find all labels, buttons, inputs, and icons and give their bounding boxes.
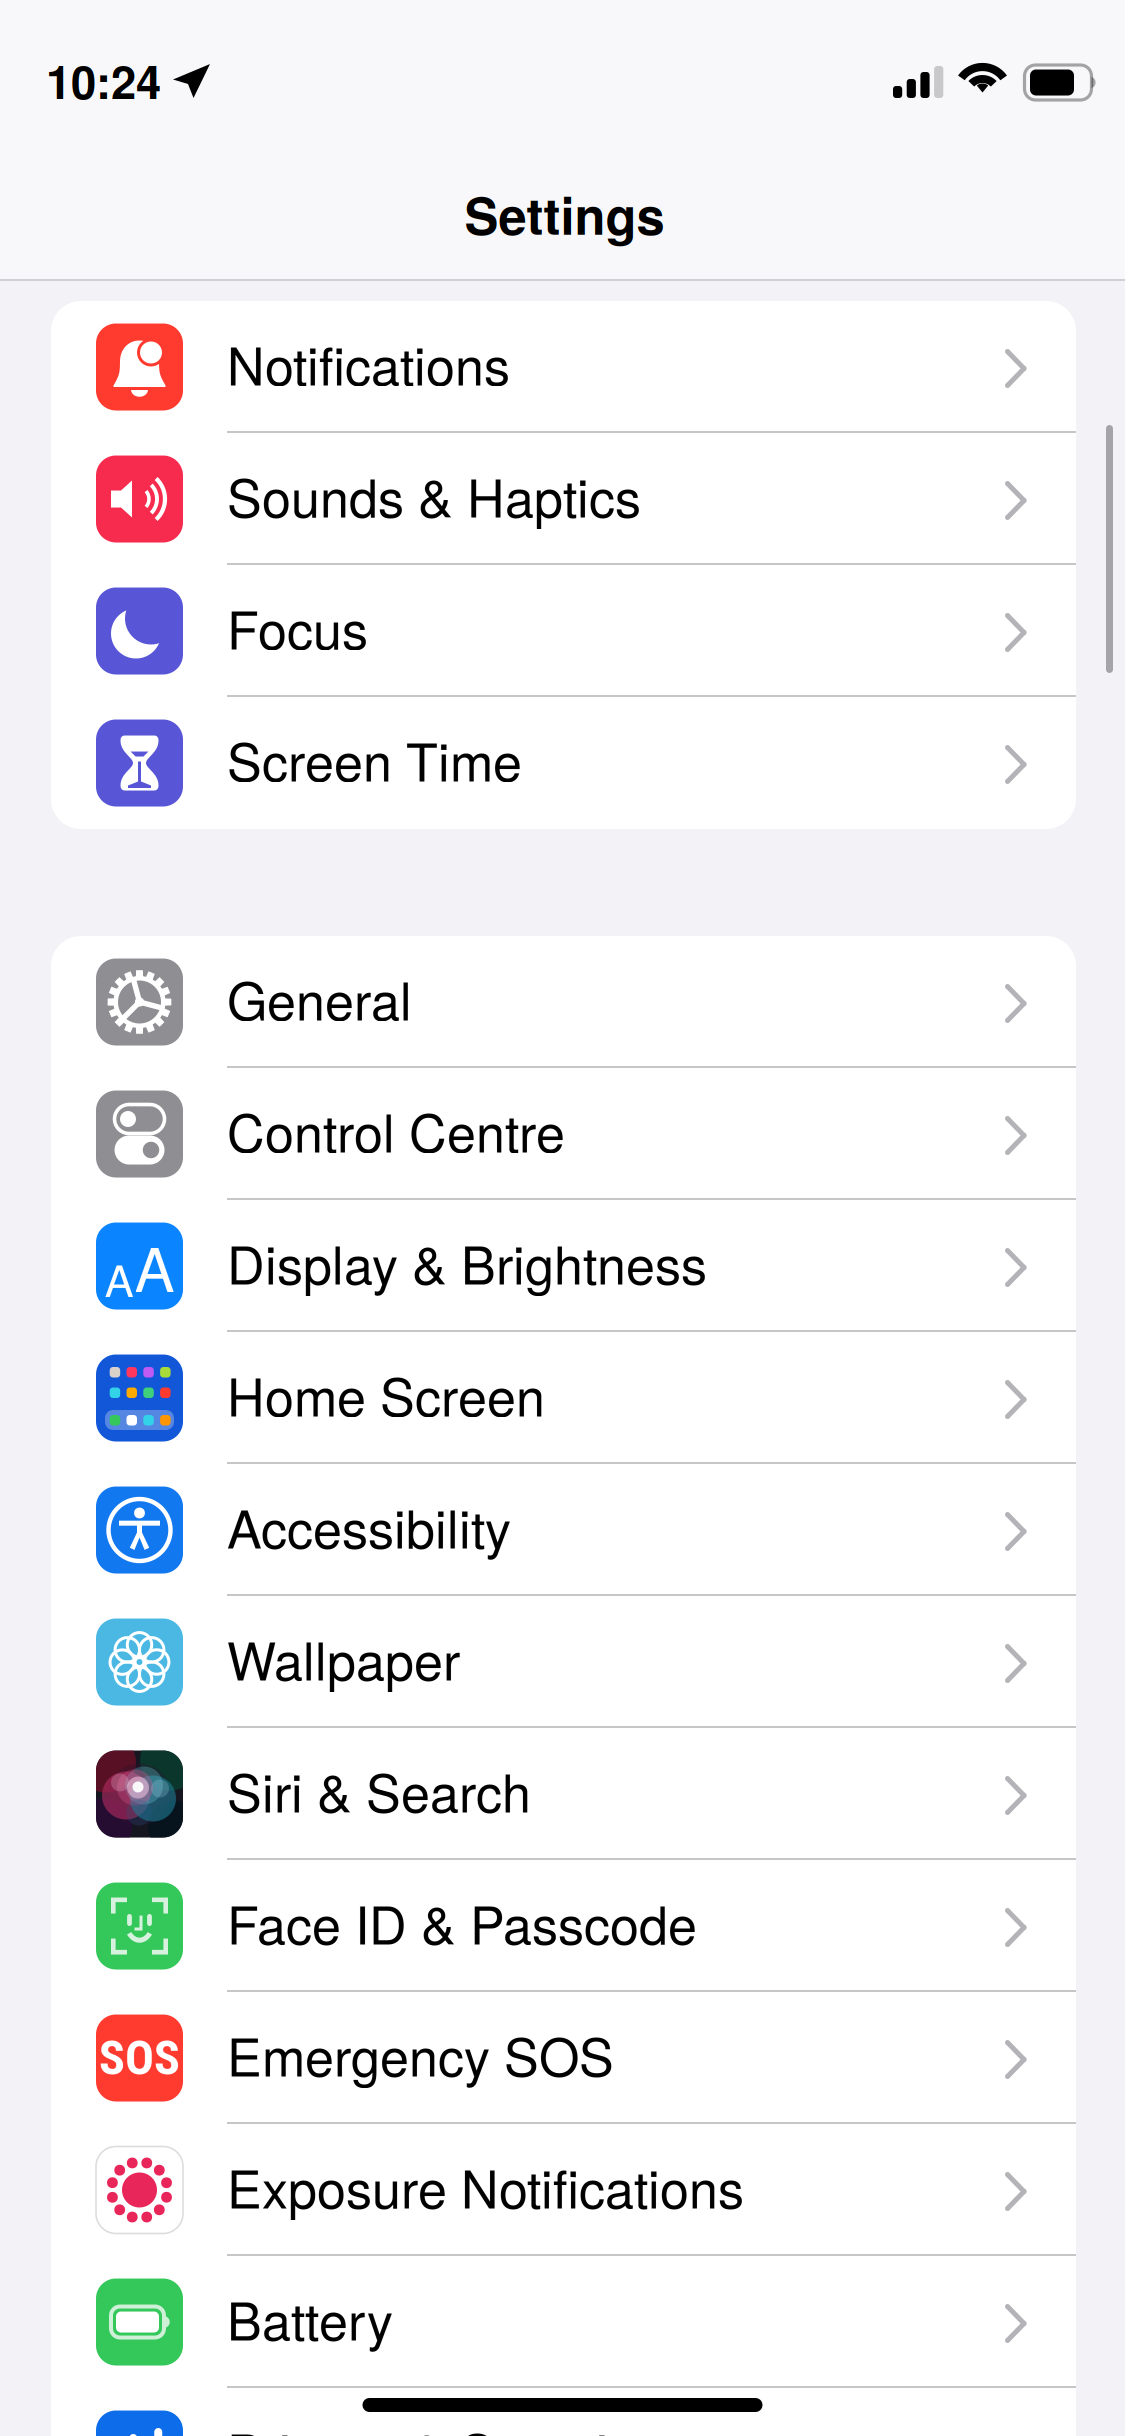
button[interactable]: Face ID & Passcode [51, 1860, 1076, 1992]
button[interactable]: Battery [51, 2256, 1076, 2388]
staticText: Display & Brightness [227, 1225, 707, 1299]
staticText: Exposure Notifications [227, 2149, 744, 2223]
staticText: Sounds & Haptics [227, 458, 641, 532]
staticText: Battery [227, 2281, 393, 2355]
staticText: Siri & Search [227, 1753, 531, 1827]
button[interactable]: Focus [51, 565, 1076, 697]
staticText: Home Screen [227, 1357, 545, 1431]
staticText: A [104, 1247, 133, 1310]
staticText: Screen Time [227, 722, 522, 796]
staticText: Face ID & Passcode [227, 1885, 697, 1959]
button[interactable]: General [51, 936, 1076, 1068]
button[interactable]: Control Centre [51, 1068, 1076, 1200]
button[interactable]: Wallpaper [51, 1596, 1076, 1728]
staticText: Wallpaper [227, 1621, 460, 1695]
staticText: Control Centre [227, 1093, 565, 1167]
button[interactable]: Screen Time [51, 697, 1076, 829]
staticText: Focus [227, 590, 368, 664]
button[interactable]: SOS [51, 1992, 1076, 2124]
staticText: Accessibility [227, 1489, 511, 1563]
button[interactable]: Siri & Search [51, 1728, 1076, 1860]
staticText: General [227, 961, 412, 1035]
staticText: Privacy & Security [227, 2413, 648, 2436]
button[interactable]: Exposure Notifications [51, 2124, 1076, 2256]
button[interactable]: Notifications [51, 301, 1076, 433]
staticText: Notifications [227, 326, 510, 400]
staticText: 10:24 [46, 48, 161, 113]
button[interactable]: Accessibility [51, 1464, 1076, 1596]
button[interactable]: A [51, 1200, 1076, 1332]
staticText: Emergency SOS [227, 2017, 614, 2091]
button[interactable]: Home Screen [51, 1332, 1076, 1464]
staticText: A [134, 1223, 174, 1309]
button[interactable]: Privacy & Security [51, 2388, 1076, 2436]
staticText: Settings [464, 178, 664, 250]
staticText: SOS [99, 2030, 180, 2086]
button[interactable]: Sounds & Haptics [51, 433, 1076, 565]
